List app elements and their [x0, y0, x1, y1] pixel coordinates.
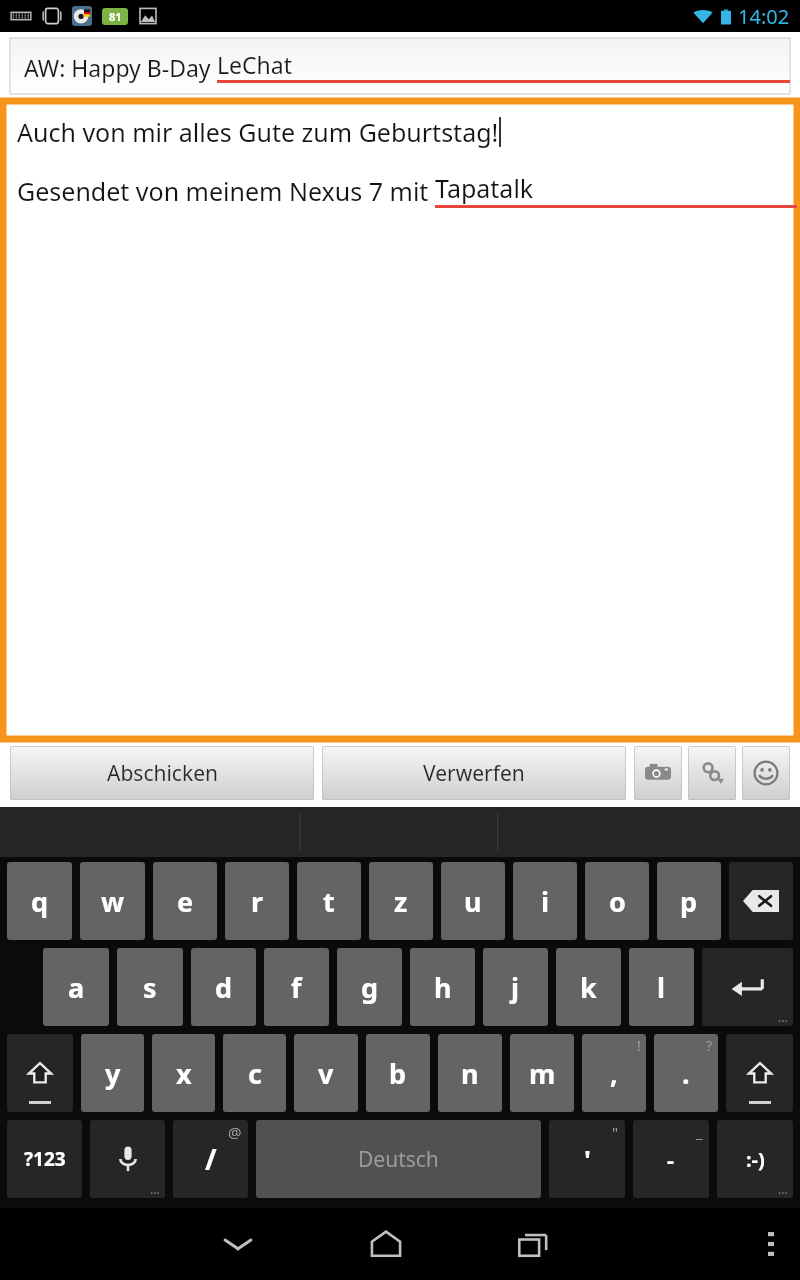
staticText: x — [176, 1055, 192, 1092]
button[interactable]: Voice input — [90, 1120, 165, 1198]
staticText: @ — [228, 1122, 242, 1142]
button[interactable]: Verwerfen — [322, 746, 626, 800]
staticText: ... — [778, 1009, 788, 1025]
staticText: y — [105, 1055, 121, 1092]
button[interactable]: g — [337, 948, 402, 1026]
button[interactable]: Symbols — [7, 1120, 82, 1198]
button[interactable]: t — [297, 862, 361, 940]
staticText: v — [318, 1055, 334, 1092]
staticText: e — [177, 883, 194, 920]
staticText: k — [580, 969, 597, 1006]
staticText: q — [31, 883, 49, 920]
staticText: u — [464, 883, 482, 920]
button[interactable]: Shift — [726, 1034, 793, 1112]
button[interactable]: Abschicken — [10, 746, 314, 800]
staticText: . — [682, 1055, 690, 1092]
button[interactable]: Insert emoticon — [742, 746, 790, 800]
button[interactable]: Home — [312, 1208, 460, 1280]
staticText: o — [609, 883, 626, 920]
button[interactable]: j — [483, 948, 548, 1026]
staticText: r — [251, 883, 264, 920]
button[interactable]: b — [366, 1034, 430, 1112]
button[interactable]: o — [585, 862, 649, 940]
staticText: Deutsch — [358, 1145, 439, 1174]
button[interactable]: More options — [742, 1208, 800, 1280]
button[interactable]: Hide keyboard — [164, 1208, 312, 1280]
staticText: a — [68, 969, 85, 1006]
button[interactable]: r — [225, 862, 289, 940]
button[interactable]: Insert link — [688, 746, 736, 800]
button[interactable]: l — [629, 948, 694, 1026]
staticText: d — [215, 969, 233, 1006]
staticText: z — [394, 883, 408, 920]
staticText: Auch von mir alles Gute zum Geburtstag! — [17, 115, 499, 149]
staticText: AW: Happy B-Day — [24, 52, 217, 83]
staticText: - — [667, 1144, 675, 1174]
staticText: _ — [696, 1122, 703, 1142]
staticText: g — [361, 969, 379, 1006]
button[interactable]: i — [513, 862, 577, 940]
staticText: Verwerfen — [423, 759, 525, 788]
staticText: " — [612, 1122, 619, 1142]
button[interactable]: a — [43, 948, 109, 1026]
button[interactable]: m — [510, 1034, 574, 1112]
button[interactable]: AW: Happy B-Day — [10, 38, 790, 94]
button[interactable]: . — [654, 1034, 718, 1112]
button[interactable]: s — [117, 948, 183, 1026]
button[interactable]: f — [264, 948, 329, 1026]
button[interactable]: k — [556, 948, 621, 1026]
staticText: ! — [637, 1036, 641, 1055]
button[interactable]: n — [438, 1034, 502, 1112]
button[interactable]: Backspace — [729, 862, 793, 940]
staticText: i — [541, 883, 550, 920]
button[interactable]: Auch von mir alles Gute zum Geburtstag! — [3, 101, 797, 739]
staticText: 81 — [109, 9, 122, 24]
staticText: , — [610, 1055, 618, 1092]
staticText: Gesendet von meinem Nexus 7 mit — [17, 174, 435, 208]
staticText: c — [248, 1055, 262, 1092]
staticText: t — [323, 883, 335, 920]
button[interactable]: z — [369, 862, 433, 940]
staticText: ? — [706, 1036, 713, 1055]
staticText: s — [143, 969, 157, 1006]
button[interactable]: Recent apps — [460, 1208, 608, 1280]
button[interactable]: h — [410, 948, 475, 1026]
button[interactable]: Emoticon — [717, 1120, 793, 1198]
staticText: b — [389, 1055, 407, 1092]
button[interactable]: Enter — [702, 948, 793, 1026]
staticText: Abschicken — [107, 759, 218, 788]
button[interactable]: Hyphen — [633, 1120, 709, 1198]
button[interactable]: c — [223, 1034, 286, 1112]
button[interactable]: , — [582, 1034, 646, 1112]
button[interactable]: Space — [256, 1120, 541, 1198]
button[interactable]: q — [7, 862, 72, 940]
staticText: :-) — [746, 1146, 765, 1173]
button[interactable]: Take photo — [634, 746, 682, 800]
staticText: m — [529, 1055, 556, 1092]
staticText: Tapatalk — [435, 171, 534, 205]
button[interactable]: e — [153, 862, 217, 940]
button[interactable]: w — [80, 862, 145, 940]
staticText: ... — [150, 1181, 160, 1197]
staticText: ?123 — [24, 1146, 66, 1172]
staticText: n — [461, 1055, 479, 1092]
button[interactable]: p — [657, 862, 721, 940]
staticText: / — [205, 1140, 217, 1178]
button[interactable]: Apostrophe — [549, 1120, 625, 1198]
button[interactable]: v — [294, 1034, 358, 1112]
staticText: j — [511, 969, 520, 1006]
button[interactable]: d — [191, 948, 256, 1026]
staticText: LeChat — [217, 49, 292, 80]
staticText: l — [657, 969, 666, 1006]
staticText: ' — [584, 1142, 591, 1177]
staticText: p — [680, 883, 698, 920]
staticText: h — [434, 969, 452, 1006]
button[interactable]: u — [441, 862, 505, 940]
button[interactable]: Shift — [7, 1034, 73, 1112]
staticText: f — [291, 969, 302, 1006]
button[interactable]: y — [81, 1034, 144, 1112]
staticText: 14:02 — [738, 3, 790, 30]
button[interactable]: Slash — [173, 1120, 248, 1198]
button[interactable]: x — [152, 1034, 215, 1112]
staticText: w — [101, 883, 125, 920]
